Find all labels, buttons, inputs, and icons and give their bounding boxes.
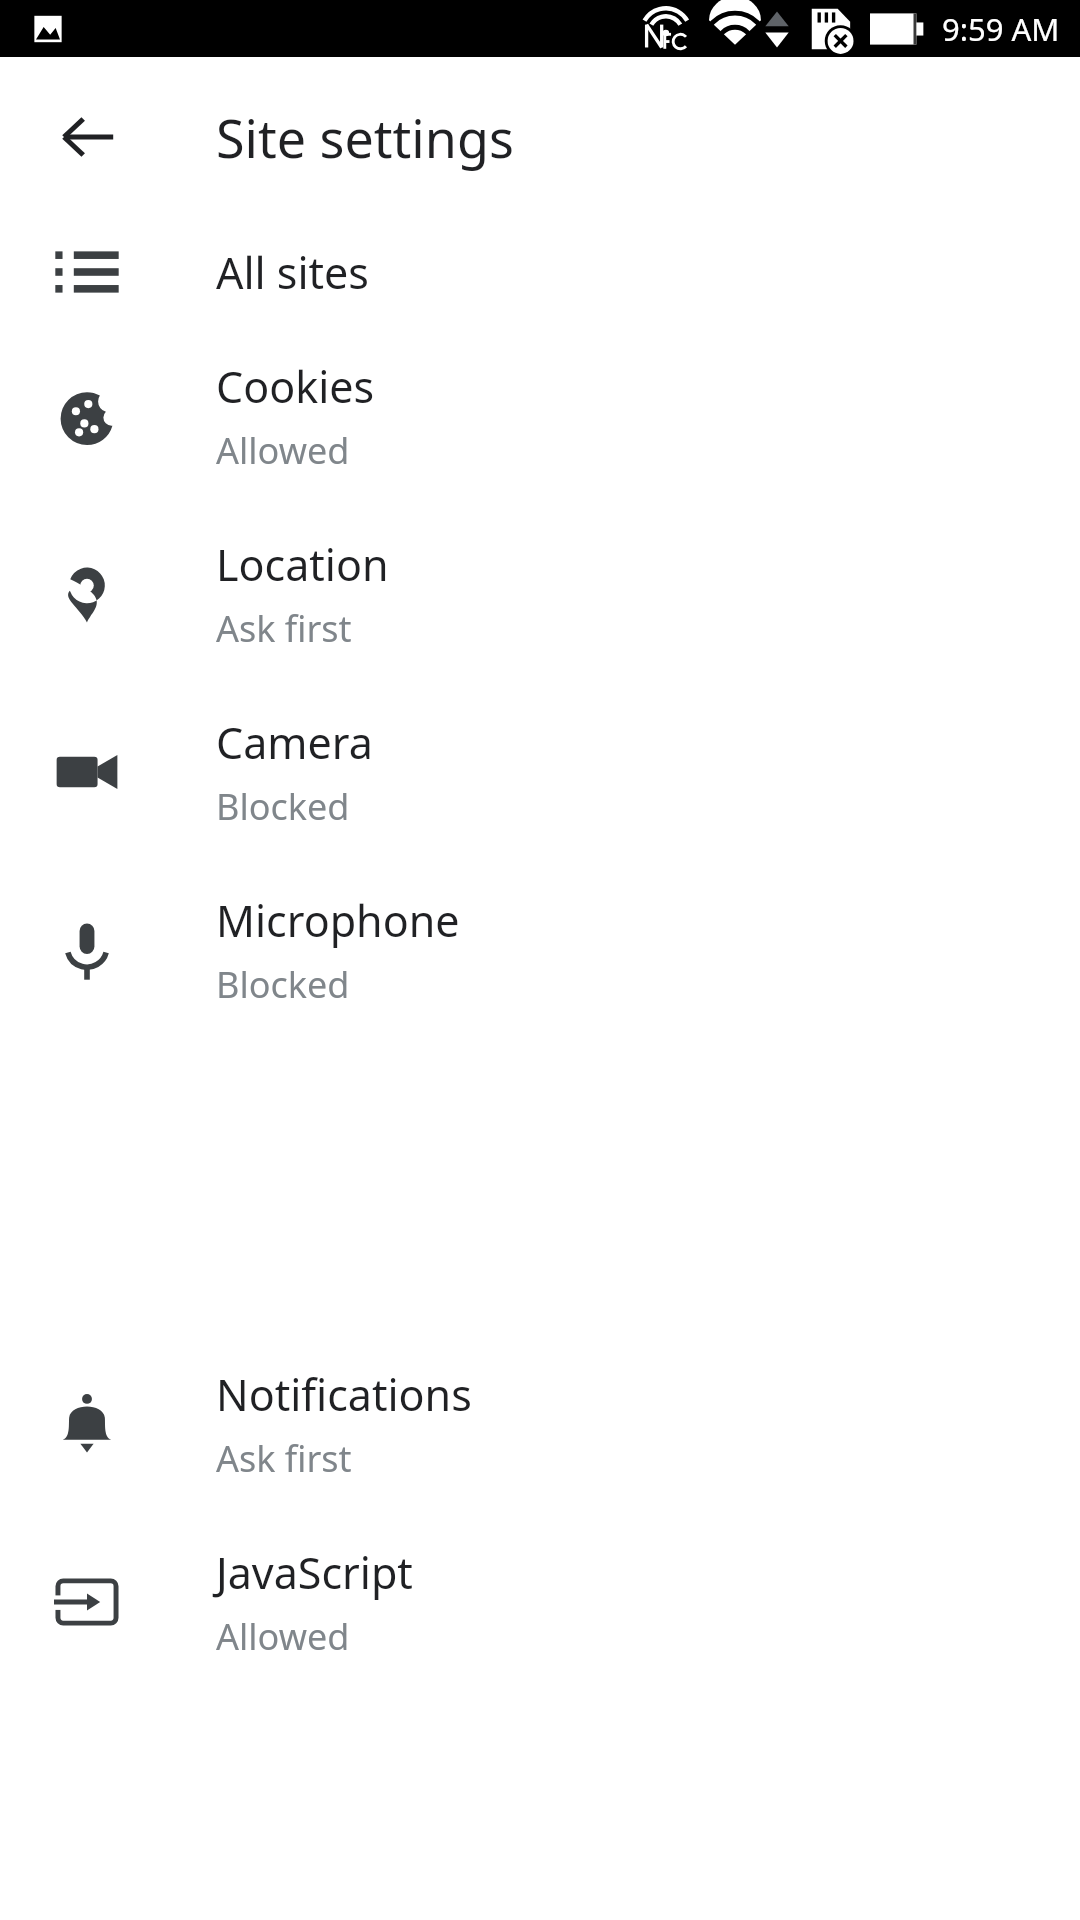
staticText: JavaScript <box>216 1543 413 1602</box>
staticText: All sites <box>216 243 369 302</box>
button[interactable]: Notifications <box>0 1335 1080 1513</box>
staticText: Notifications <box>216 1365 472 1424</box>
staticText: Allowed <box>216 426 350 475</box>
staticText: Camera <box>216 713 373 772</box>
button[interactable]: Camera <box>0 683 1080 861</box>
staticText: Cookies <box>216 357 375 416</box>
staticText: Ask first <box>216 1434 352 1483</box>
staticText: Microphone <box>216 891 460 950</box>
button[interactable]: JavaScript <box>0 1513 1080 1691</box>
button[interactable]: Location <box>0 505 1080 683</box>
staticText: Blocked <box>216 782 350 831</box>
staticText: Location <box>216 535 389 594</box>
button[interactable]: Back <box>33 82 143 192</box>
button[interactable]: All sites <box>0 217 1080 327</box>
staticText: Allowed <box>216 1612 350 1661</box>
staticText: Ask first <box>216 604 352 653</box>
button[interactable]: Microphone <box>0 861 1080 1039</box>
staticText: Blocked <box>216 960 350 1009</box>
button[interactable]: Cookies <box>0 327 1080 505</box>
staticText: 9:59 AM <box>942 8 1060 50</box>
staticText: Site settings <box>216 102 514 173</box>
